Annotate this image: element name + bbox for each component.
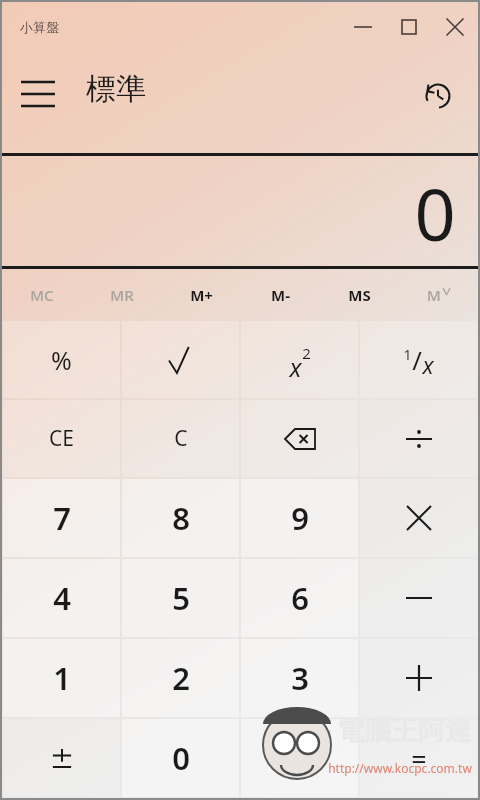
staticText: M- bbox=[271, 285, 290, 305]
staticText: 9 bbox=[291, 497, 309, 539]
staticText: CE bbox=[49, 424, 74, 453]
button[interactable]: 6 bbox=[241, 559, 358, 637]
button[interactable] bbox=[3, 719, 120, 797]
button[interactable]: 5 bbox=[122, 559, 239, 637]
button[interactable]: CE bbox=[3, 400, 120, 477]
staticText: MR bbox=[110, 285, 134, 305]
button[interactable]: % bbox=[3, 321, 120, 398]
staticText: x bbox=[422, 349, 434, 380]
staticText: . bbox=[295, 737, 304, 779]
staticText: x bbox=[289, 350, 302, 384]
button[interactable]: 9 bbox=[241, 479, 358, 557]
button[interactable]: . bbox=[241, 719, 358, 797]
button[interactable]: MR bbox=[82, 269, 162, 320]
staticText: 1 bbox=[403, 344, 412, 364]
staticText: M bbox=[427, 285, 441, 305]
staticText: http://www.kocpc.com.tw bbox=[328, 760, 472, 776]
staticText: / bbox=[412, 342, 422, 377]
button[interactable]: Maximize bbox=[386, 2, 432, 52]
button[interactable]: 4 bbox=[3, 559, 120, 637]
staticText: 小算盤 bbox=[20, 19, 59, 35]
button[interactable]: Backspace bbox=[241, 400, 358, 477]
button[interactable]: M- bbox=[241, 269, 320, 320]
staticText: 6 bbox=[291, 577, 309, 619]
staticText: MC bbox=[30, 285, 54, 305]
staticText: 3 bbox=[291, 657, 309, 699]
button[interactable]: Menu bbox=[10, 68, 66, 120]
button[interactable]: 8 bbox=[122, 479, 239, 557]
button[interactable]: Minimize bbox=[340, 2, 386, 52]
staticText: 4 bbox=[53, 577, 71, 619]
staticText: M+ bbox=[190, 285, 213, 305]
button[interactable]: MC bbox=[2, 269, 82, 320]
staticText: 8 bbox=[172, 497, 190, 539]
button[interactable]: M bbox=[399, 269, 478, 320]
button[interactable] bbox=[360, 559, 477, 637]
staticText: 0 bbox=[414, 164, 456, 262]
button[interactable]: 7 bbox=[3, 479, 120, 557]
button[interactable] bbox=[122, 321, 239, 398]
button[interactable]: 0 bbox=[122, 719, 239, 797]
staticText: = bbox=[411, 740, 427, 777]
button[interactable]: 3 bbox=[241, 639, 358, 717]
button[interactable]: 1 bbox=[3, 639, 120, 717]
button[interactable]: History bbox=[412, 70, 464, 122]
staticText: 1 bbox=[53, 657, 71, 699]
button[interactable] bbox=[360, 479, 477, 557]
staticText: 2 bbox=[302, 343, 311, 363]
button[interactable]: 2 bbox=[122, 639, 239, 717]
button[interactable]: MS bbox=[320, 269, 399, 320]
staticText: 5 bbox=[172, 577, 190, 619]
staticText: 2 bbox=[172, 657, 190, 699]
staticText: % bbox=[51, 343, 72, 377]
button[interactable]: 1 bbox=[360, 321, 477, 398]
button[interactable]: Close bbox=[432, 2, 478, 52]
staticText: 電腦王阿達 bbox=[337, 714, 472, 748]
button[interactable]: M+ bbox=[162, 269, 241, 320]
staticText: C bbox=[174, 424, 188, 453]
button[interactable] bbox=[360, 400, 477, 477]
button[interactable]: x bbox=[241, 321, 358, 398]
button[interactable]: C bbox=[122, 400, 239, 477]
staticText: MS bbox=[348, 285, 371, 305]
button[interactable]: = bbox=[360, 719, 477, 797]
button[interactable] bbox=[360, 639, 477, 717]
staticText: 0 bbox=[172, 737, 190, 779]
staticText: 標準 bbox=[86, 70, 146, 108]
staticText: 7 bbox=[53, 497, 71, 539]
